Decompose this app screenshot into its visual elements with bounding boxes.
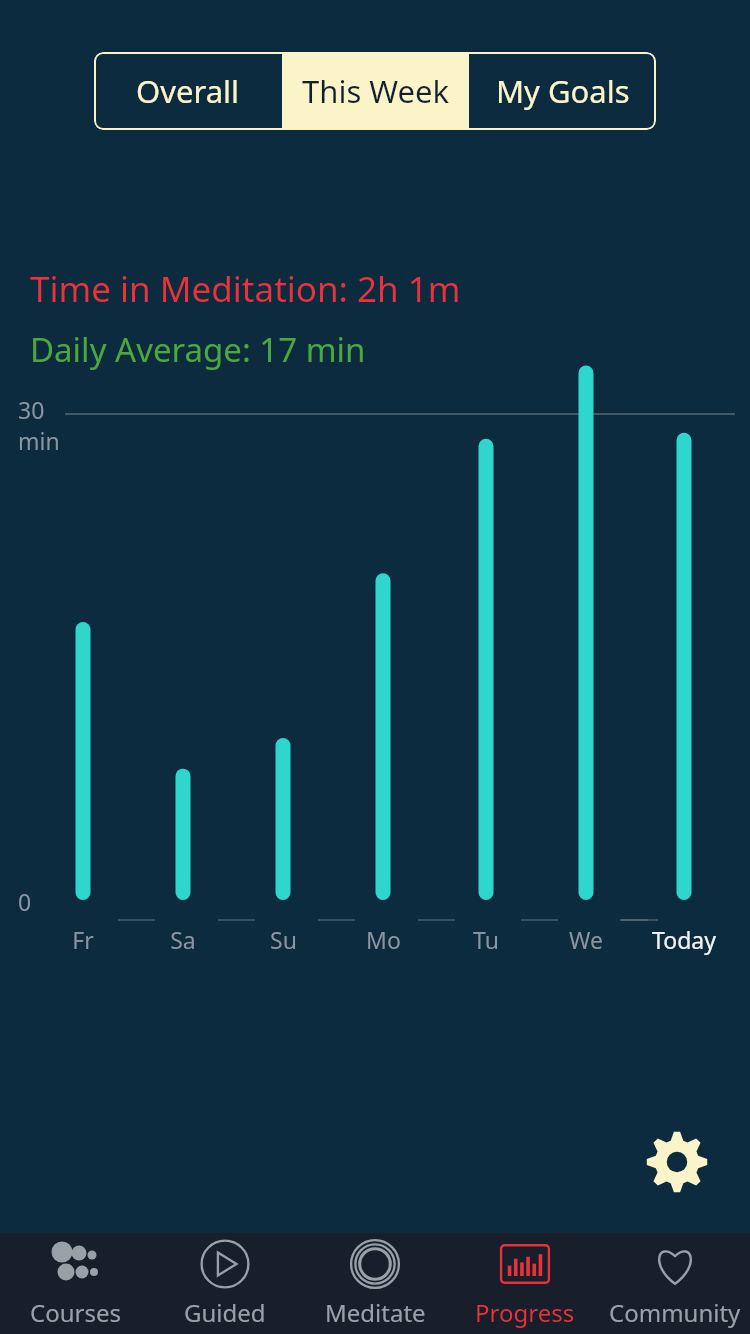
button[interactable]: Settings	[644, 1129, 710, 1195]
button[interactable]: Community	[600, 1233, 750, 1334]
staticText: Daily Average: 17 min	[30, 327, 366, 372]
button[interactable]: Progress	[450, 1233, 600, 1334]
staticText: Today	[652, 924, 716, 955]
button[interactable]: This Week	[282, 52, 469, 130]
staticText: Su	[270, 924, 297, 955]
staticText: min	[18, 425, 60, 456]
button[interactable]: Meditate	[300, 1233, 450, 1334]
staticText: Guided	[184, 1296, 266, 1329]
staticText: My Goals	[496, 70, 630, 112]
staticText: Overall	[136, 70, 240, 112]
button[interactable]: Guided	[150, 1233, 300, 1334]
staticText: Courses	[30, 1296, 121, 1329]
staticText: Tu	[473, 924, 499, 955]
button[interactable]: My Goals	[469, 52, 656, 130]
staticText: 0	[18, 886, 32, 917]
staticText: Fr	[72, 924, 94, 955]
staticText: This Week	[302, 70, 450, 112]
staticText: Time in Meditation: 2h 1m	[30, 265, 461, 313]
button[interactable]: Overall	[94, 52, 282, 130]
staticText: Community	[609, 1296, 741, 1329]
staticText: 30	[18, 394, 45, 425]
staticText: Mo	[366, 924, 401, 955]
button[interactable]: Courses	[0, 1233, 150, 1334]
staticText: Sa	[170, 924, 196, 955]
staticText: Meditate	[325, 1296, 426, 1329]
staticText: We	[569, 924, 603, 955]
staticText: Progress	[475, 1296, 575, 1329]
